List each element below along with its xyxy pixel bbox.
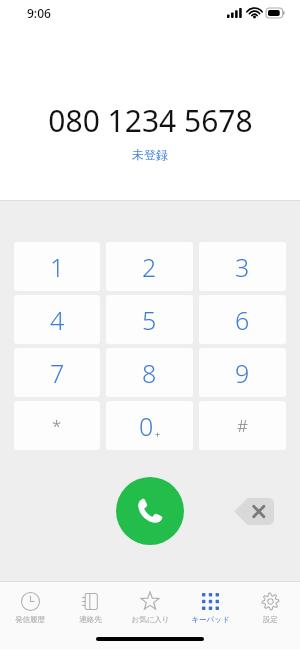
button[interactable]: キーパッド: [180, 582, 240, 632]
staticText: お気に入り: [131, 615, 170, 624]
staticText: #: [237, 414, 248, 437]
button[interactable]: *: [14, 401, 100, 450]
button[interactable]: 連絡先: [60, 582, 120, 632]
staticText: 5: [142, 303, 157, 337]
staticText: 9:06: [27, 5, 51, 21]
button[interactable]: 9: [199, 348, 286, 397]
button[interactable]: 6: [199, 295, 286, 344]
button[interactable]: 0: [106, 401, 193, 450]
staticText: 4: [50, 303, 65, 337]
button[interactable]: 8: [106, 348, 193, 397]
staticText: 0: [139, 409, 154, 443]
staticText: 6: [235, 303, 250, 337]
button[interactable]: 2: [106, 242, 193, 291]
button[interactable]: Call: [116, 477, 184, 545]
button[interactable]: 4: [14, 295, 100, 344]
button[interactable]: 7: [14, 348, 100, 397]
staticText: 9: [235, 356, 250, 390]
staticText: 1: [50, 250, 65, 284]
button[interactable]: 未登録: [132, 147, 168, 162]
staticText: 発信履歴: [15, 615, 45, 624]
button[interactable]: 設定: [240, 582, 300, 632]
button[interactable]: お気に入り: [120, 582, 180, 632]
button[interactable]: 1: [14, 242, 100, 291]
staticText: キーパッド: [191, 615, 230, 624]
staticText: 設定: [263, 615, 278, 624]
staticText: +: [155, 428, 161, 440]
button[interactable]: Delete: [234, 498, 274, 525]
button[interactable]: #: [199, 401, 286, 450]
staticText: 3: [235, 250, 250, 284]
button[interactable]: 3: [199, 242, 286, 291]
staticText: *: [52, 414, 62, 437]
staticText: 7: [50, 356, 65, 390]
button[interactable]: 発信履歴: [0, 582, 60, 632]
staticText: 連絡先: [79, 615, 102, 624]
button[interactable]: 5: [106, 295, 193, 344]
staticText: 2: [142, 250, 157, 284]
staticText: 8: [142, 356, 157, 390]
staticText: 080 1234 5678: [48, 100, 253, 141]
